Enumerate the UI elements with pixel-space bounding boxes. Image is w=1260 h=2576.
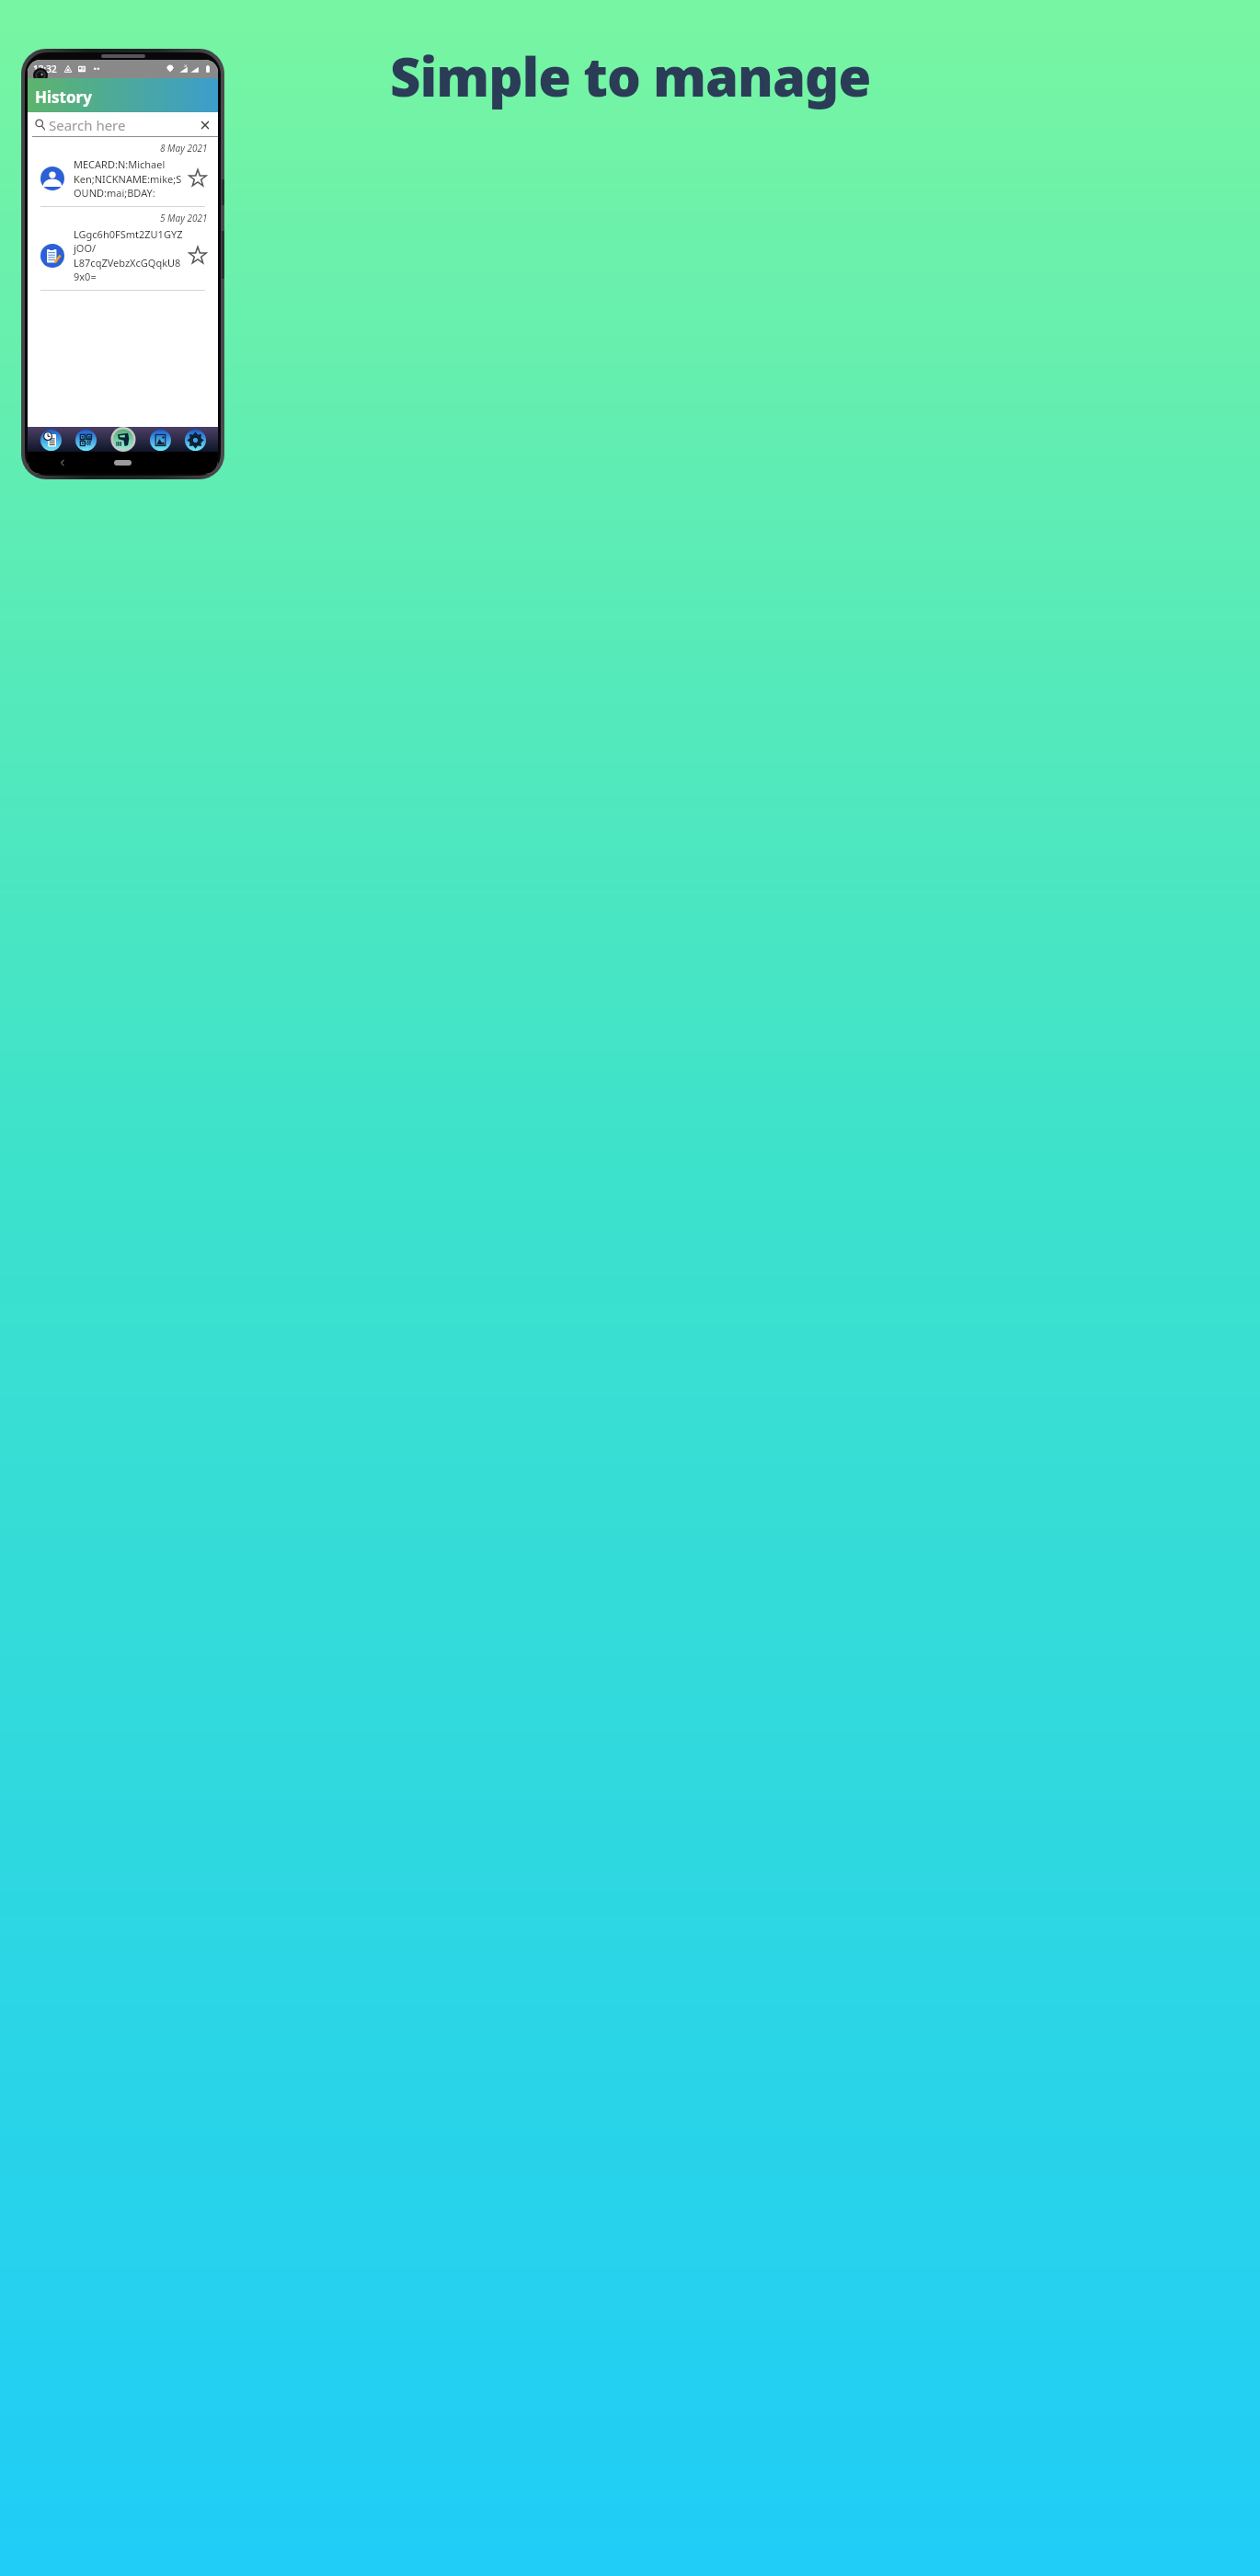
button[interactable]: Scan barcode <box>109 427 137 452</box>
staticText: MECARD:N:Michael <box>74 157 166 171</box>
button[interactable]: 8 May 2021 <box>28 137 218 207</box>
staticText: Ken;NICKNAME:mike;SOUND:mai;BDAY: <box>74 172 184 200</box>
staticText: 12:32 <box>33 63 57 75</box>
button[interactable]: Back <box>58 458 67 467</box>
staticText: History <box>35 86 92 108</box>
button[interactable]: Generate QR code <box>74 428 97 452</box>
button[interactable]: Favourite <box>188 246 208 266</box>
button[interactable]: 5 May 2021 <box>28 207 218 291</box>
staticText: Search here <box>49 116 126 134</box>
button[interactable]: Settings <box>183 428 207 452</box>
staticText: Simple to manage <box>390 40 871 112</box>
button[interactable]: Search <box>28 112 218 137</box>
staticText: 8 May 2021 <box>160 142 208 155</box>
staticText: LGgc6h0FSmt2ZU1GYZjOO/ <box>74 227 184 255</box>
button[interactable]: Home <box>114 460 132 466</box>
staticText: L87cqZVebzXcGQqkU89x0= <box>74 256 184 283</box>
button[interactable]: Images <box>148 428 172 452</box>
button[interactable]: History <box>39 428 63 452</box>
other: Search <box>34 119 46 131</box>
button[interactable]: Clear search <box>199 119 212 132</box>
button[interactable]: Favourite <box>188 168 208 189</box>
staticText: 5 May 2021 <box>160 212 208 224</box>
